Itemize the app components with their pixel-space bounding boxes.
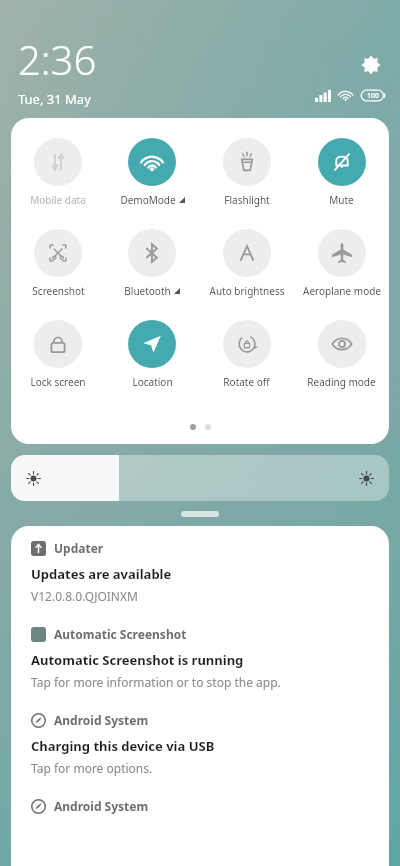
button[interactable]: Bluetooth bbox=[105, 227, 199, 300]
staticText: Automatic Screenshot bbox=[54, 626, 187, 642]
button[interactable] bbox=[181, 511, 219, 517]
button[interactable]: Rotate off bbox=[199, 318, 294, 391]
staticText: Updates are available bbox=[31, 565, 172, 583]
staticText: Lock screen bbox=[30, 375, 86, 389]
staticText: Mute bbox=[329, 193, 354, 207]
staticText: Aeroplane mode bbox=[303, 284, 381, 298]
button[interactable]: Lock screen bbox=[11, 318, 105, 391]
button[interactable]: Settings bbox=[354, 48, 388, 82]
staticText: Tap for more information or to stop the … bbox=[31, 674, 281, 690]
staticText: 2:36 bbox=[18, 32, 97, 86]
button[interactable]: Flashlight bbox=[199, 136, 294, 209]
button[interactable]: Android System bbox=[11, 698, 389, 784]
button[interactable]: Mobile data bbox=[11, 136, 105, 209]
staticText: Charging this device via USB bbox=[31, 737, 215, 755]
staticText: Auto brightness bbox=[209, 284, 285, 298]
staticText: Location bbox=[132, 375, 173, 389]
staticText: DemoMode bbox=[120, 193, 176, 207]
button[interactable]: Auto brightness bbox=[199, 227, 294, 300]
staticText: Android System bbox=[54, 712, 149, 728]
button[interactable] bbox=[11, 455, 389, 501]
button[interactable]: Aeroplane mode bbox=[294, 227, 389, 300]
button[interactable]: DemoMode bbox=[105, 136, 199, 209]
staticText: Screenshot bbox=[32, 284, 85, 298]
button[interactable]: Automatic Screenshot bbox=[11, 612, 389, 698]
button[interactable]: Mute bbox=[294, 136, 389, 209]
staticText: Rotate off bbox=[223, 375, 270, 389]
button[interactable]: Location bbox=[105, 318, 199, 391]
button[interactable]: Screenshot bbox=[11, 227, 105, 300]
staticText: Tue, 31 May bbox=[18, 90, 91, 108]
staticText: Automatic Screenshot is running bbox=[31, 651, 244, 669]
button[interactable]: Reading mode bbox=[294, 318, 389, 391]
staticText: 100 bbox=[367, 91, 380, 101]
staticText: Tap for more options. bbox=[31, 760, 153, 776]
staticText: Android System bbox=[54, 798, 149, 814]
button[interactable]: Updater bbox=[11, 526, 389, 612]
staticText: Mobile data bbox=[30, 193, 86, 207]
staticText: Reading mode bbox=[307, 375, 376, 389]
staticText: Flashlight bbox=[224, 193, 270, 207]
staticText: V12.0.8.0.QJOINXM bbox=[31, 588, 138, 604]
staticText: Bluetooth bbox=[124, 284, 171, 298]
button[interactable]: Android System bbox=[11, 784, 389, 822]
staticText: Updater bbox=[54, 540, 104, 556]
